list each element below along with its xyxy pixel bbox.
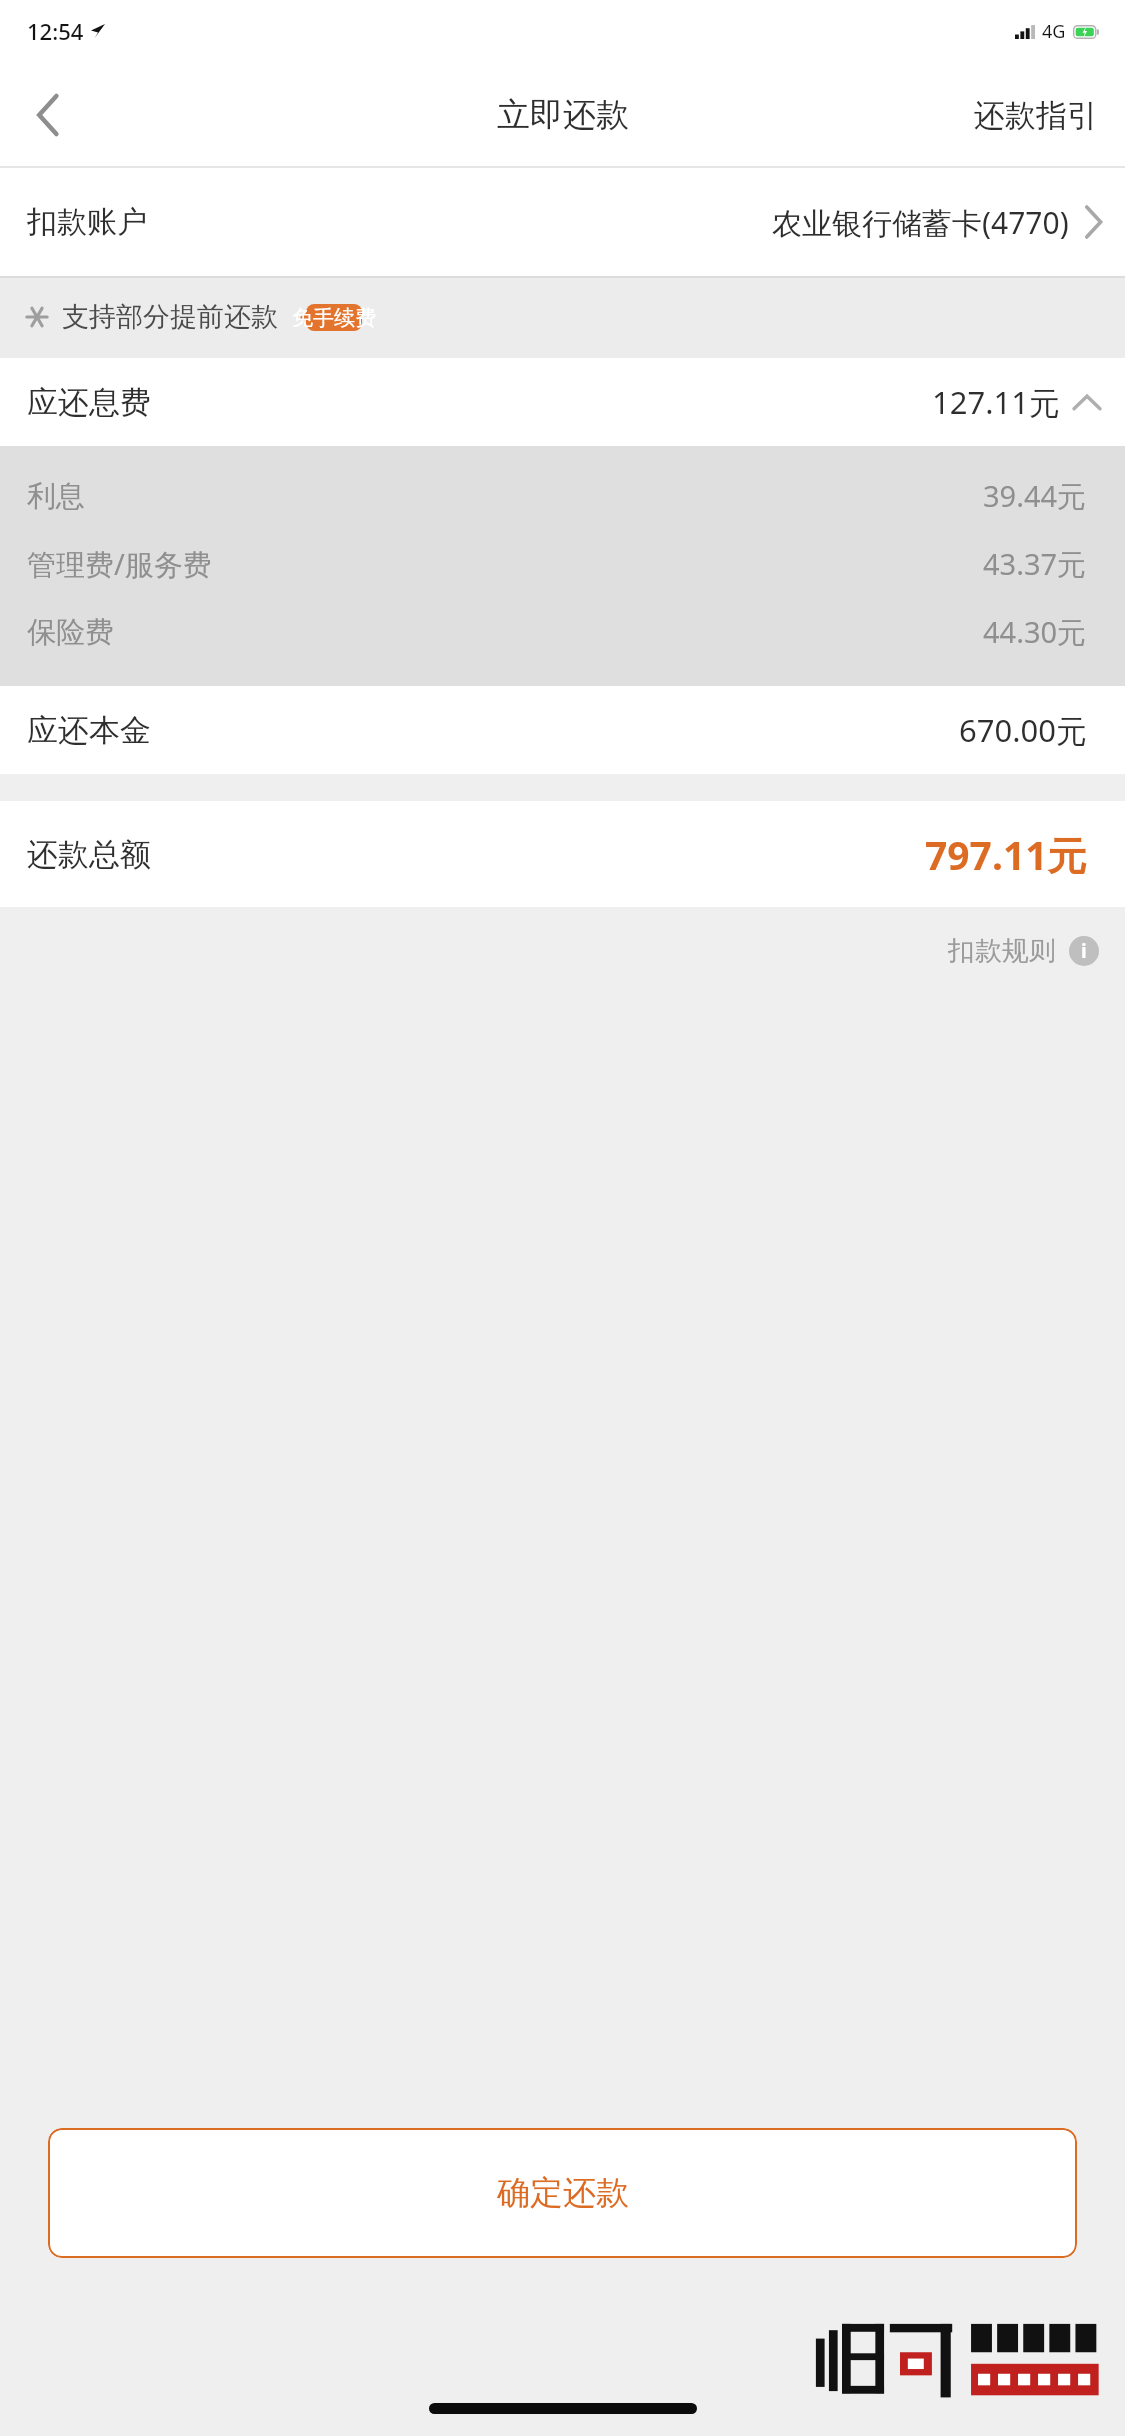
staticText: 支持部分提前还款	[62, 300, 278, 334]
staticText: i	[1081, 938, 1087, 964]
staticText: 确定还款	[497, 2172, 629, 2214]
staticText: 797.11元	[925, 828, 1087, 881]
staticText: 127.11元	[932, 381, 1060, 423]
staticText: 利息	[27, 478, 85, 515]
staticText: 670.00元	[959, 709, 1087, 751]
other: 扣款规则说明	[1069, 936, 1099, 966]
staticText: 扣款规则	[948, 934, 1056, 968]
staticText: 4G	[1042, 19, 1066, 44]
staticText: 还款指引	[974, 96, 1098, 135]
staticText: 保险费	[27, 614, 114, 651]
button[interactable]: 返回	[0, 62, 96, 168]
button[interactable]: 还款指引	[947, 62, 1125, 168]
button[interactable]: 应还息费	[0, 358, 1125, 446]
staticText: 农业银行储蓄卡(4770)	[772, 202, 1069, 243]
staticText: 43.37元	[983, 544, 1087, 584]
staticText: 44.30元	[983, 612, 1087, 652]
staticText: 免手续费	[292, 305, 376, 331]
staticText: 立即还款	[497, 94, 629, 136]
staticText: 扣款账户	[27, 203, 147, 241]
staticText: 应还息费	[27, 383, 151, 422]
button[interactable]: 确定还款	[48, 2128, 1077, 2258]
staticText: 12:54	[27, 16, 84, 46]
staticText: 应还本金	[27, 711, 151, 750]
staticText: 管理费/服务费	[27, 544, 212, 584]
button[interactable]: 扣款规则	[928, 924, 1125, 978]
button[interactable]: 扣款账户	[0, 168, 1125, 276]
staticText: 还款总额	[27, 835, 151, 874]
staticText: 39.44元	[983, 476, 1087, 516]
